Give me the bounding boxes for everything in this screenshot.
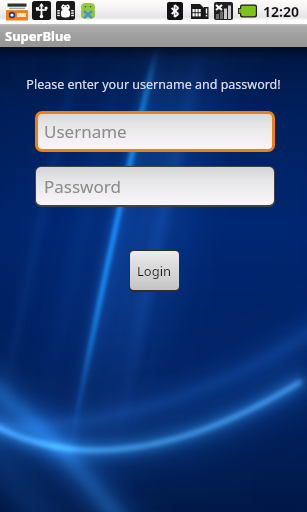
button[interactable]: Login [130,251,179,290]
staticText: Please enter your username and password! [0,76,307,93]
staticText: Password [44,175,121,198]
button[interactable]: Username [38,114,272,149]
staticText: 12:20 [263,2,299,21]
staticText: SuperBlue [5,27,72,45]
staticText: Login [137,262,172,280]
button[interactable]: Password [36,167,274,205]
staticText: Username [44,120,127,143]
